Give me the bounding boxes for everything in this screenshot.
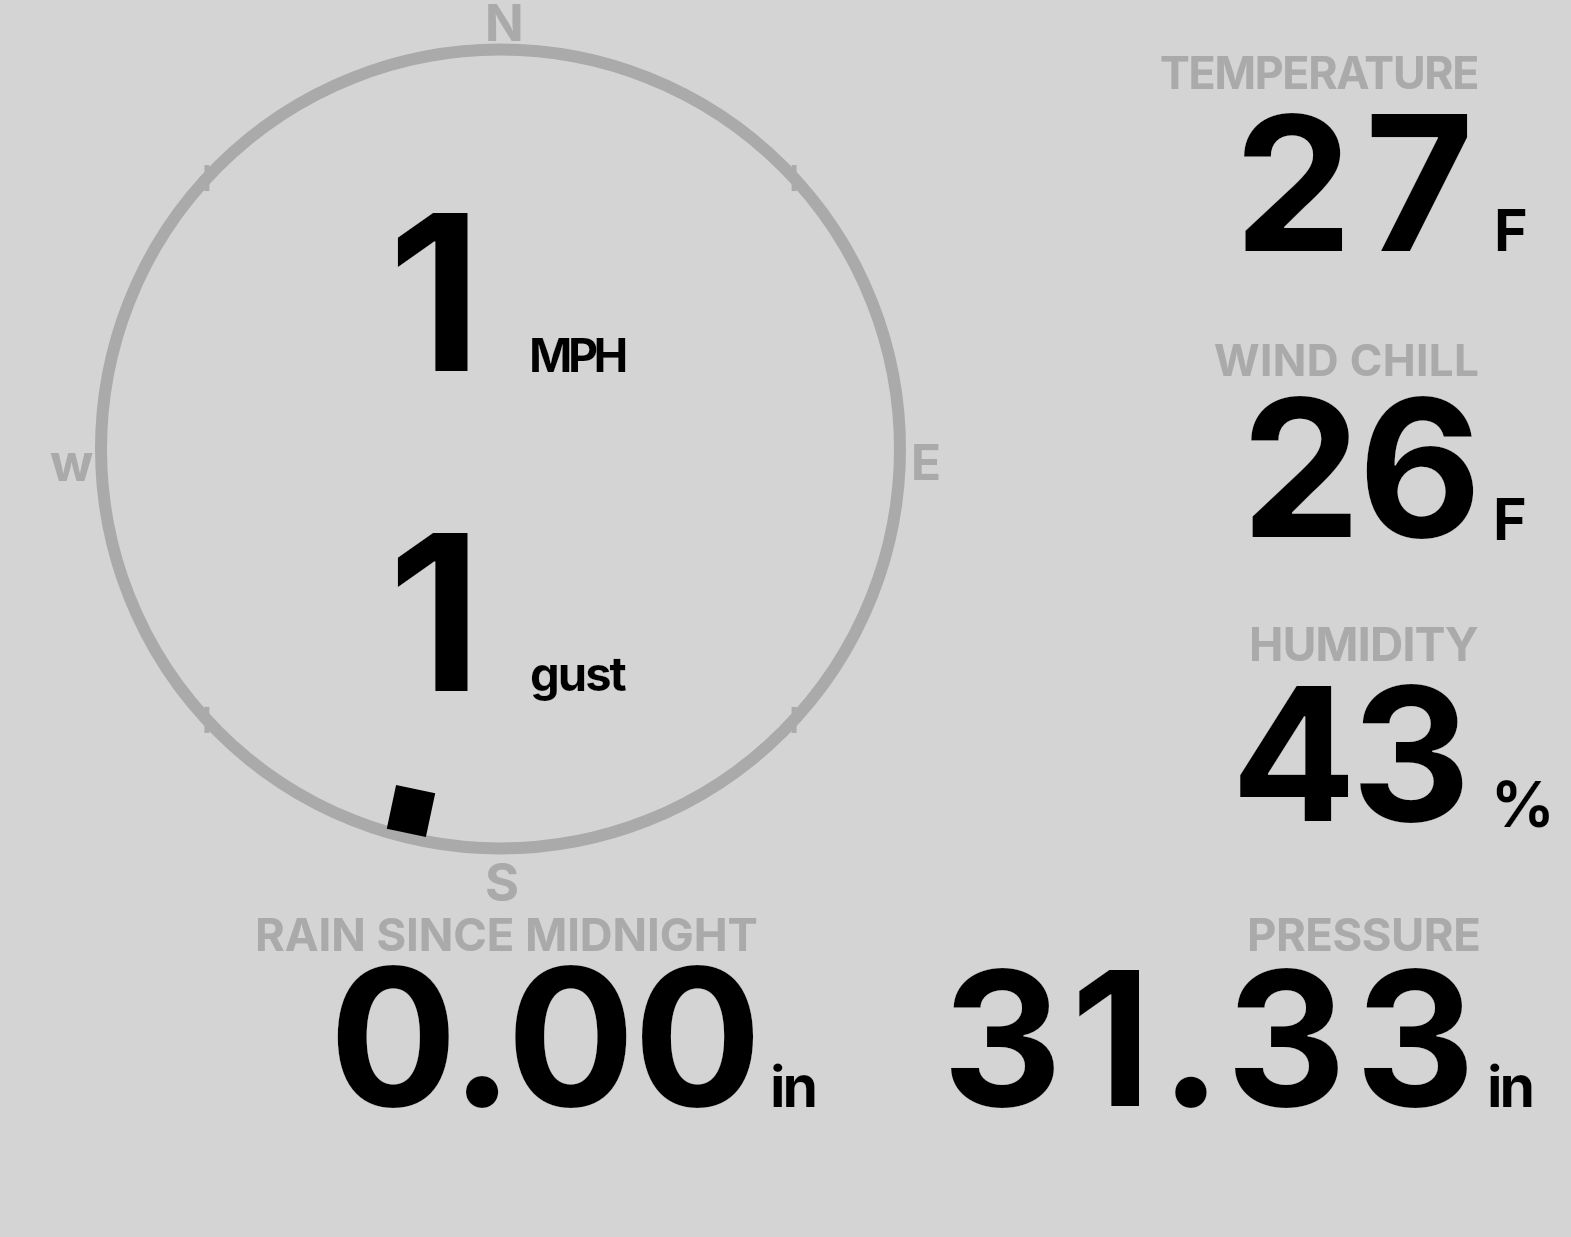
staticText: PRESSURE: [1247, 907, 1481, 962]
button[interactable]: Temperature 27 degrees Fahrenheit: [1010, 40, 1570, 280]
staticText: 1: [388, 160, 482, 424]
staticText: WIND CHILL: [1214, 333, 1480, 386]
staticText: F: [1493, 484, 1527, 554]
staticText: w: [50, 432, 94, 494]
staticText: 31.33: [942, 925, 1484, 1151]
staticText: MPH: [529, 327, 624, 383]
staticText: 26: [1241, 352, 1479, 583]
staticText: in: [770, 1052, 816, 1121]
staticText: N: [485, 0, 524, 53]
staticText: RAIN SINCE MIDNIGHT: [255, 907, 758, 962]
staticText: 1: [388, 480, 482, 744]
staticText: E: [911, 432, 941, 492]
staticText: 27: [1234, 69, 1487, 296]
staticText: in: [1487, 1052, 1533, 1121]
button[interactable]: Wind 1 miles per hour, gusting 1, from t…: [60, 20, 950, 900]
staticText: 0.00: [329, 921, 760, 1152]
staticText: 43: [1231, 641, 1467, 865]
button[interactable]: Pressure 31.33 inches: [880, 900, 1570, 1130]
staticText: S: [485, 851, 520, 914]
staticText: gust: [530, 645, 625, 702]
button[interactable]: Humidity 43 percent: [1010, 605, 1570, 855]
staticText: TEMPERATURE: [1160, 46, 1479, 100]
staticText: %: [1491, 766, 1555, 842]
button[interactable]: Wind chill 26 degrees Fahrenheit: [1010, 320, 1570, 570]
staticText: HUMIDITY: [1249, 616, 1478, 672]
staticText: F: [1494, 195, 1528, 265]
button[interactable]: Rain since midnight 0.00 inches: [180, 900, 860, 1130]
